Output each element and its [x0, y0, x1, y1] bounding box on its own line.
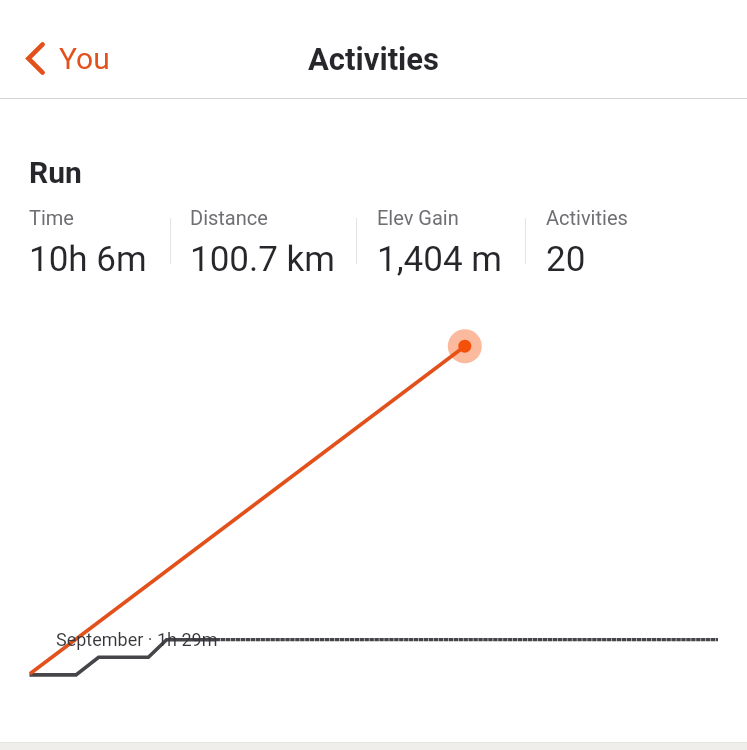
staticText: 100.7 km [190, 239, 336, 280]
staticText: Distance [190, 206, 268, 229]
staticText: Activities [546, 206, 628, 229]
staticText: You [59, 41, 110, 76]
staticText: Elev Gain [377, 206, 459, 229]
staticText: Time [29, 206, 74, 229]
staticText: 20 [546, 239, 586, 280]
staticText: September · 1h 29m [56, 629, 218, 650]
button[interactable]: Back to You [18, 36, 118, 81]
staticText: 10h 6m [29, 239, 147, 280]
staticText: Activities [308, 41, 440, 77]
staticText: 1,404 m [377, 239, 502, 280]
staticText: Run [29, 155, 82, 190]
